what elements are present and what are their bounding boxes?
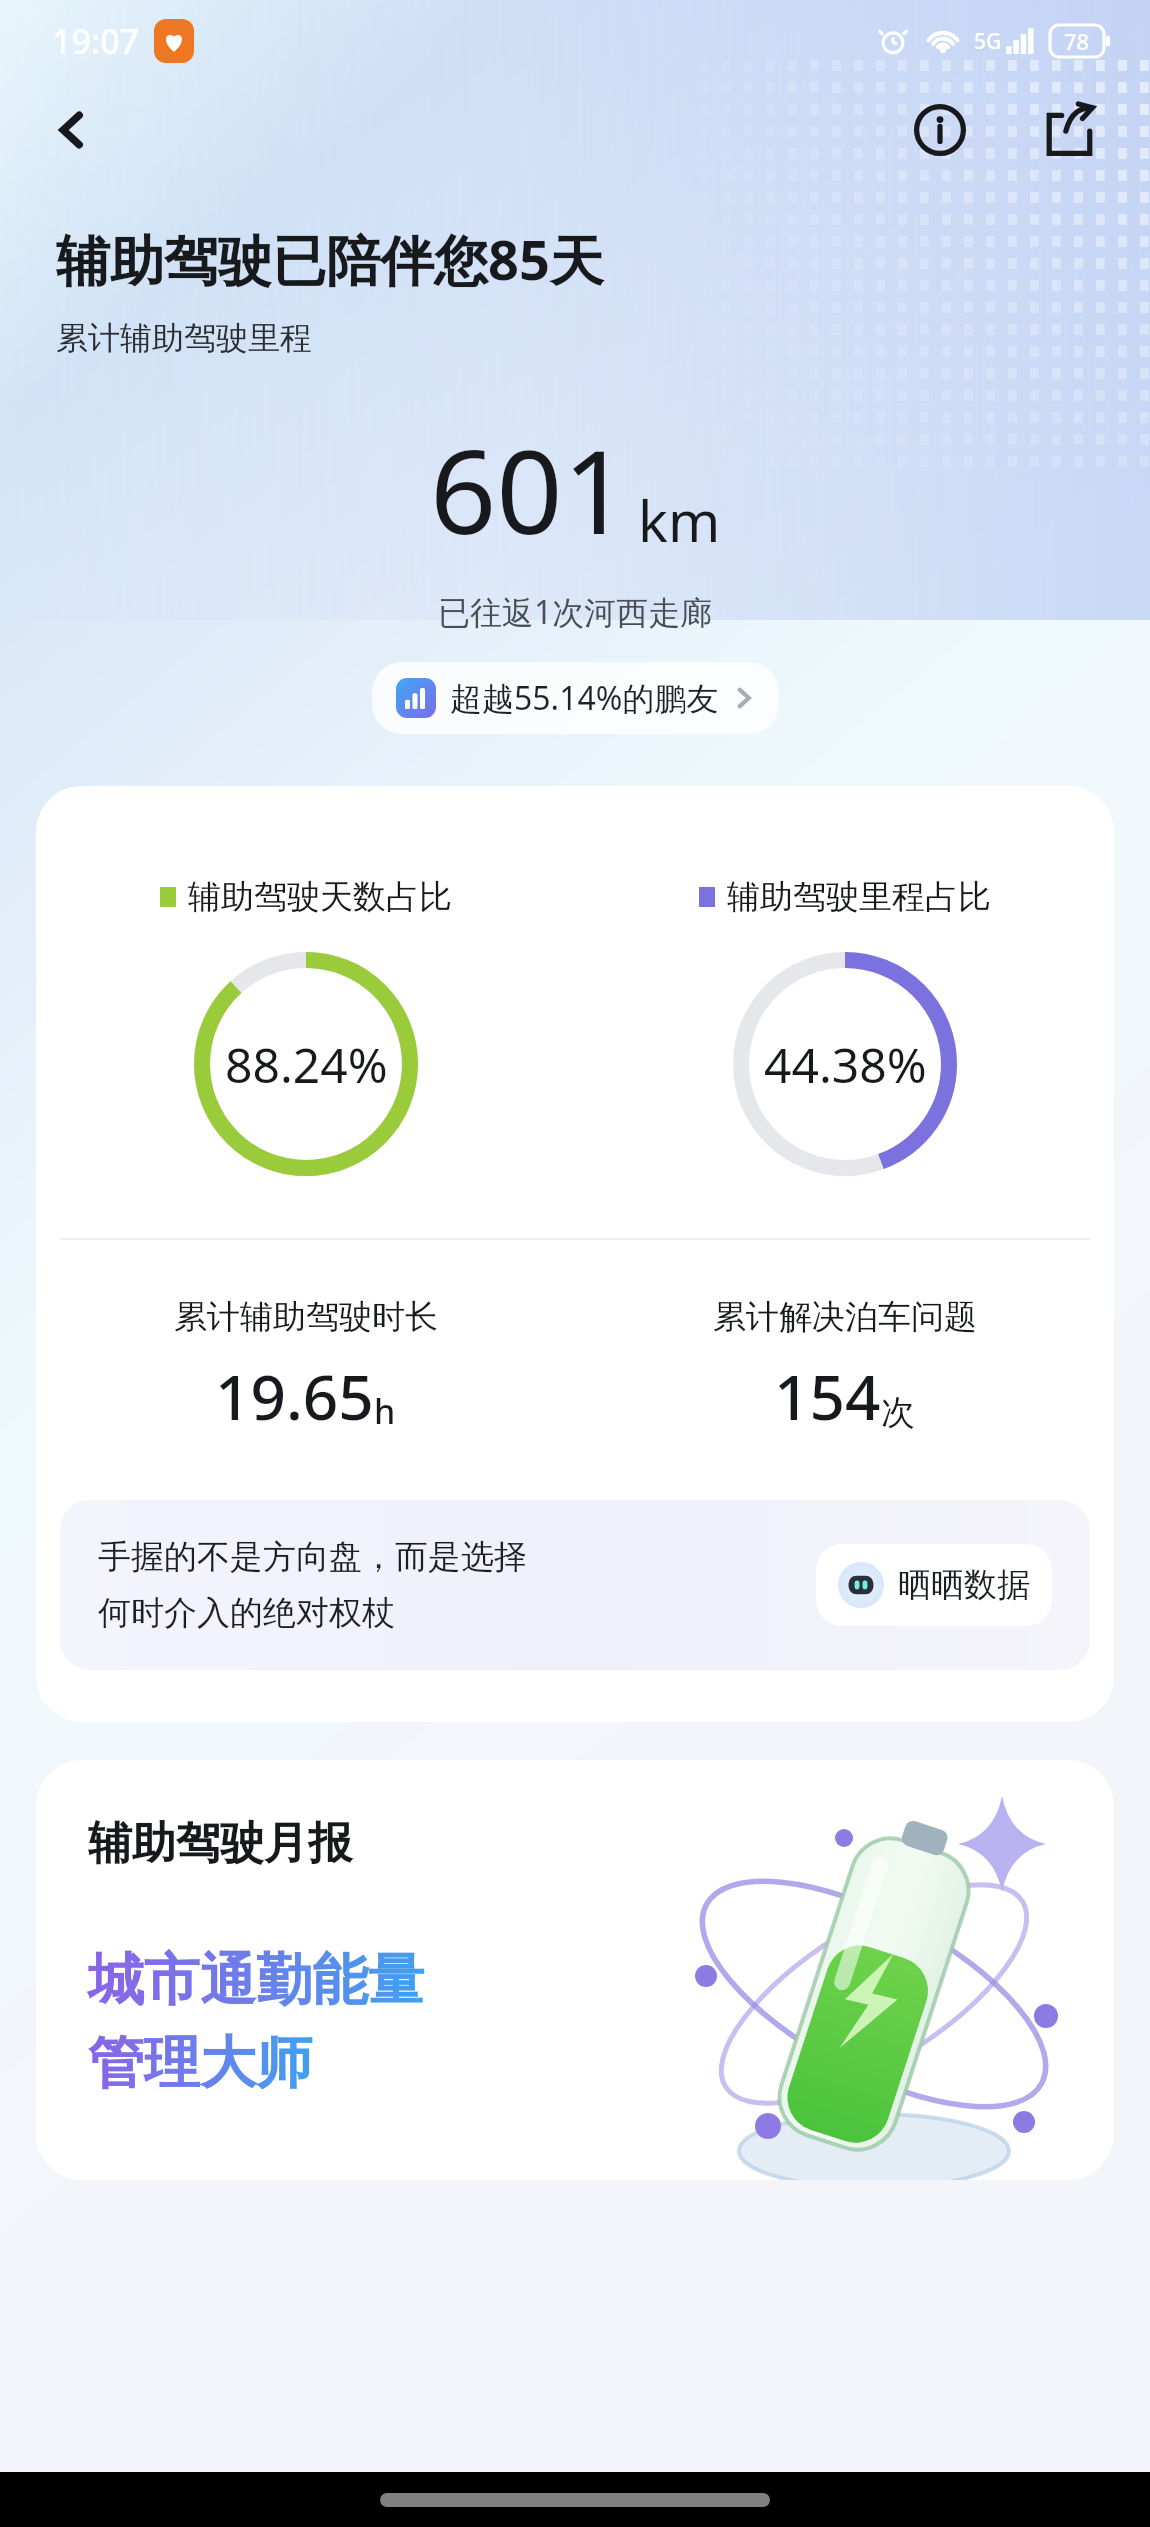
staticText: 城市通勤能量 — [88, 1945, 424, 2016]
staticText: 78 — [1064, 26, 1090, 56]
staticText: 何时介入的绝对权杖 — [98, 1592, 395, 1634]
button[interactable]: 晒晒数据 — [816, 1544, 1052, 1626]
staticText: 辅助驾驶里程占比 — [727, 876, 991, 918]
button[interactable]: Back — [34, 92, 110, 168]
staticText: 累计辅助驾驶里程 — [56, 318, 312, 358]
staticText: 19:07 — [52, 18, 140, 64]
staticText: 154 — [774, 1354, 881, 1438]
staticText: 601 — [430, 410, 630, 568]
staticText: 19.65 — [215, 1354, 374, 1438]
staticText: 88.24% — [225, 1032, 388, 1097]
staticText: 辅助驾驶月报 — [88, 1816, 352, 1871]
staticText: 手握的不是方向盘，而是选择 — [98, 1536, 527, 1578]
staticText: 44.38% — [764, 1032, 927, 1097]
staticText: km — [638, 482, 721, 558]
staticText: 次 — [881, 1391, 915, 1434]
staticText: 管理大师 — [88, 2028, 312, 2099]
staticText: 已往返1次河西走廊 — [438, 590, 713, 634]
staticText: 晒晒数据 — [898, 1564, 1030, 1606]
button[interactable]: 辅助驾驶月报 — [36, 1760, 1114, 2180]
button[interactable]: 超越55.14%的鹏友 — [372, 662, 779, 734]
staticText: 超越55.14%的鹏友 — [450, 676, 719, 720]
button[interactable]: Info — [902, 92, 978, 168]
button[interactable]: Share — [1032, 92, 1108, 168]
staticText: 5G — [974, 27, 1002, 56]
staticText: 累计解决泊车问题 — [713, 1296, 977, 1338]
staticText: 累计辅助驾驶时长 — [174, 1296, 438, 1338]
staticText: h — [374, 1388, 396, 1434]
staticText: 辅助驾驶天数占比 — [188, 876, 452, 918]
staticText: 辅助驾驶已陪伴您85天 — [56, 222, 604, 296]
